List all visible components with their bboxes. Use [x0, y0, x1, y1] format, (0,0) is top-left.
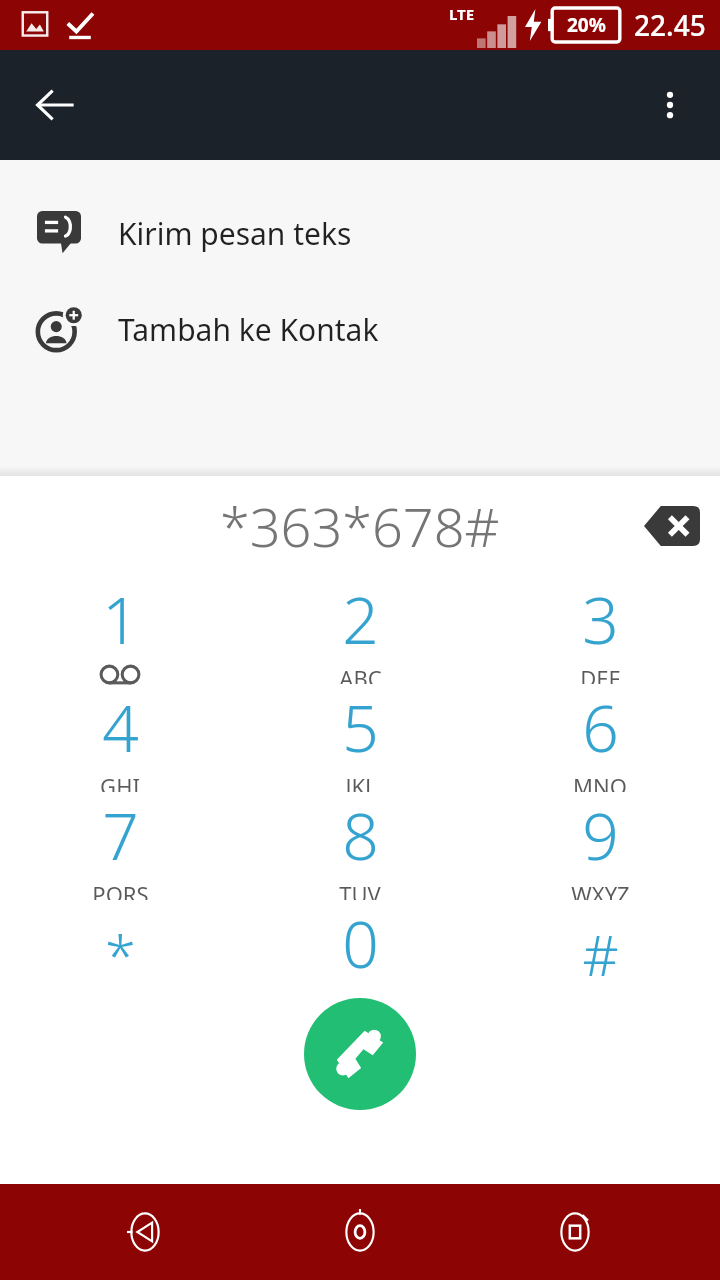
button[interactable]: Tambah ke Kontak [0, 292, 720, 366]
button[interactable]: Back [75, 1184, 215, 1280]
button[interactable]: 6 [480, 684, 720, 792]
staticText: LTE [449, 4, 475, 24]
button[interactable]: Back [22, 71, 90, 139]
staticText: MNO [573, 771, 627, 792]
staticText: 6 [582, 684, 619, 771]
staticText: Kirim pesan teks [118, 213, 352, 254]
staticText: 8 [342, 792, 379, 879]
staticText: WXYZ [571, 879, 630, 900]
staticText: ABC [339, 663, 382, 684]
button[interactable]: Call [304, 998, 416, 1110]
staticText: Tambah ke Kontak [118, 309, 379, 350]
staticText: 2 [342, 576, 379, 663]
staticText: PQRS [92, 879, 149, 900]
staticText: *363*678# [220, 489, 500, 563]
staticText: # [582, 916, 619, 992]
staticText: 9 [582, 792, 619, 879]
button[interactable]: # [480, 900, 720, 1008]
button[interactable]: 8 [240, 792, 480, 900]
button[interactable]: More options [638, 73, 702, 137]
button[interactable]: 9 [480, 792, 720, 900]
button[interactable]: * [0, 900, 240, 1008]
button[interactable]: Home [290, 1184, 430, 1280]
button[interactable]: 0 [240, 900, 480, 1008]
staticText: JKL [345, 771, 377, 792]
button[interactable]: 1 [0, 576, 240, 684]
staticText: TUV [339, 879, 381, 900]
button[interactable]: 3 [480, 576, 720, 684]
staticText: GHI [100, 771, 140, 792]
staticText: 3 [582, 576, 619, 663]
button[interactable]: 5 [240, 684, 480, 792]
button[interactable]: Kirim pesan teks [0, 196, 720, 270]
button[interactable]: Recents [505, 1184, 645, 1280]
button[interactable]: 4 [0, 684, 240, 792]
staticText: DEF [580, 663, 620, 684]
staticText: 7 [102, 792, 139, 879]
staticText: 0 [342, 900, 379, 987]
button[interactable]: 7 [0, 792, 240, 900]
staticText: 22.45 [634, 6, 706, 44]
button[interactable]: Backspace [636, 490, 708, 562]
staticText: 1 [102, 576, 139, 663]
staticText: 4 [102, 684, 139, 771]
button[interactable]: 2 [240, 576, 480, 684]
staticText: + [354, 987, 367, 1008]
staticText: * [105, 916, 136, 992]
staticText: 20% [567, 12, 606, 38]
staticText: 5 [342, 684, 379, 771]
